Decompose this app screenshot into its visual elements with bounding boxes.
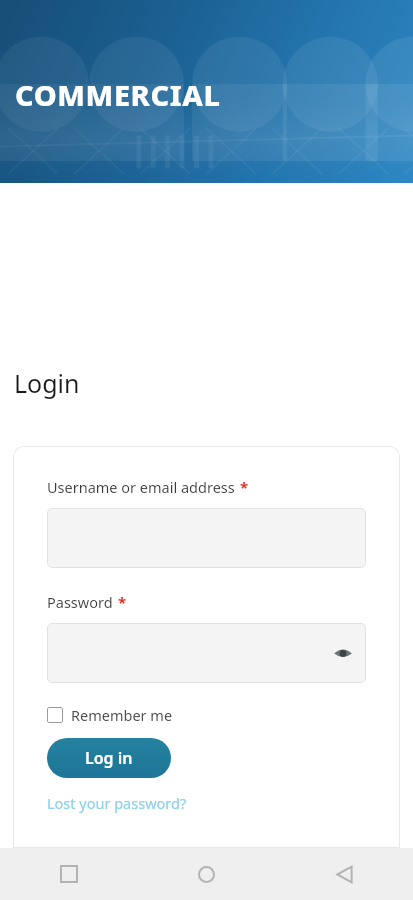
button[interactable]: Show password: [47, 623, 366, 683]
button[interactable]: Remember me: [47, 703, 173, 727]
staticText: COMMERCIAL: [15, 75, 221, 114]
staticText: *: [240, 477, 249, 497]
button[interactable]: Show password: [330, 640, 356, 666]
button[interactable]: Lost your password?: [47, 793, 187, 813]
button[interactable]: Log in: [47, 738, 171, 778]
staticText: Remember me: [71, 705, 173, 725]
staticText: Log in: [85, 747, 133, 769]
staticText: Username or email address: [47, 477, 235, 497]
button[interactable]: Back: [275, 848, 413, 900]
button[interactable]: [47, 508, 366, 568]
staticText: Password: [47, 592, 113, 612]
staticText: *: [118, 592, 127, 612]
button[interactable]: Recent apps: [0, 848, 137, 900]
button[interactable]: Home: [137, 848, 275, 900]
staticText: Login: [14, 366, 80, 400]
